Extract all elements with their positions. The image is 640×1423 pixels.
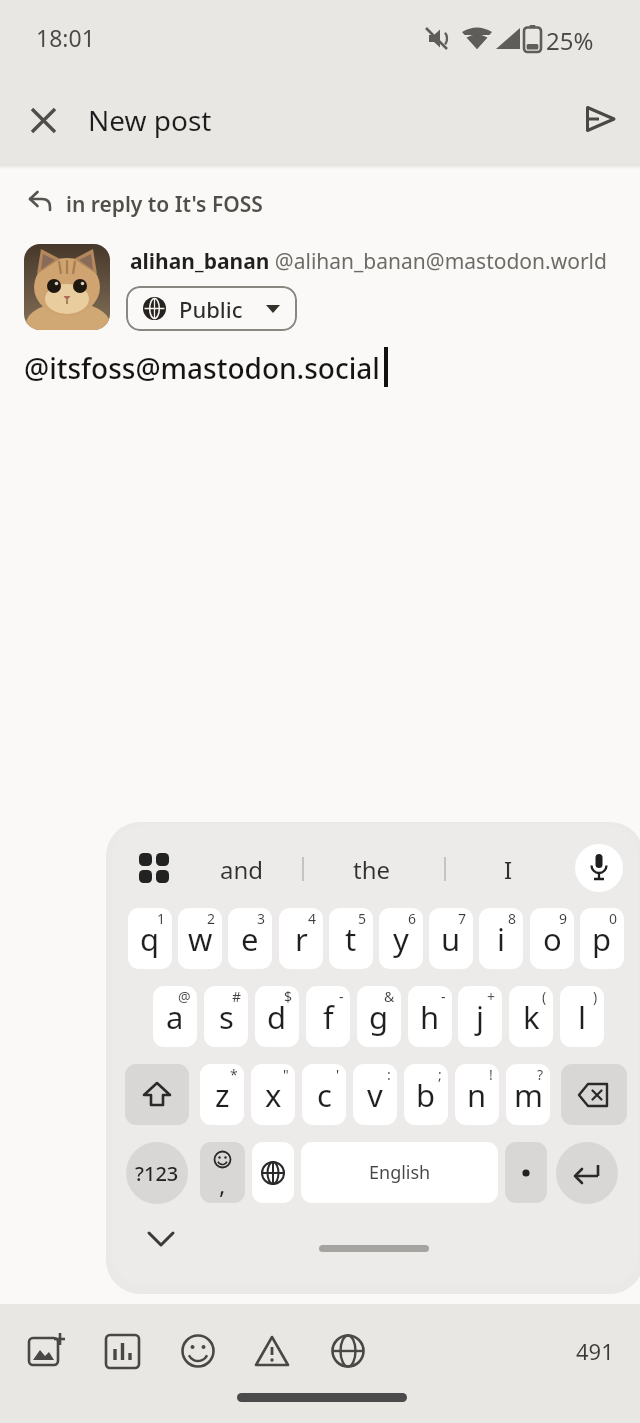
- staticText: 1: [157, 909, 166, 928]
- staticText: j: [476, 996, 484, 1038]
- button[interactable]: ,: [200, 1142, 245, 1203]
- staticText: o: [543, 918, 562, 960]
- staticText: ?: [537, 1065, 544, 1084]
- staticText: alihan_banan @alihan_banan@mastodon.worl…: [130, 247, 607, 276]
- staticText: p: [592, 918, 612, 960]
- staticText: ?123: [135, 1160, 179, 1187]
- button[interactable]: b: [404, 1064, 448, 1125]
- staticText: I: [504, 853, 513, 886]
- button[interactable]: English: [301, 1142, 498, 1203]
- staticText: 7: [458, 909, 467, 928]
- staticText: 3: [257, 909, 266, 928]
- staticText: r: [295, 918, 308, 960]
- button[interactable]: j: [458, 986, 502, 1047]
- button[interactable]: q: [128, 908, 172, 969]
- button[interactable]: [575, 844, 623, 892]
- button[interactable]: g: [357, 986, 401, 1047]
- button[interactable]: i: [479, 908, 523, 969]
- button[interactable]: h: [408, 986, 452, 1047]
- button[interactable]: z: [200, 1064, 244, 1125]
- staticText: Public: [179, 294, 243, 324]
- staticText: -: [441, 987, 446, 1006]
- staticText: h: [420, 996, 440, 1038]
- staticText: u: [441, 918, 461, 960]
- staticText: 9: [559, 909, 568, 928]
- button[interactable]: [561, 1064, 627, 1125]
- button[interactable]: and: [197, 851, 287, 887]
- button[interactable]: [146, 1229, 176, 1249]
- button[interactable]: a: [153, 986, 197, 1047]
- staticText: 491: [576, 1336, 614, 1366]
- staticText: ): [593, 987, 598, 1006]
- button[interactable]: ?123: [126, 1142, 188, 1204]
- button[interactable]: v: [353, 1064, 397, 1125]
- button[interactable]: y: [379, 908, 423, 969]
- staticText: 5: [358, 909, 367, 928]
- button[interactable]: [319, 1322, 377, 1380]
- button[interactable]: [505, 1142, 547, 1203]
- staticText: f: [323, 996, 334, 1038]
- staticText: &: [384, 987, 395, 1006]
- staticText: ,: [219, 1168, 226, 1201]
- button[interactable]: r: [279, 908, 323, 969]
- staticText: e: [241, 918, 259, 960]
- button[interactable]: x: [251, 1064, 295, 1125]
- button[interactable]: f: [306, 986, 350, 1047]
- button[interactable]: d: [255, 986, 299, 1047]
- staticText: and: [220, 853, 264, 886]
- button[interactable]: l: [560, 986, 604, 1047]
- staticText: 0: [609, 909, 618, 928]
- button[interactable]: [18, 95, 68, 145]
- button[interactable]: t: [329, 908, 373, 969]
- staticText: i: [497, 918, 505, 960]
- button[interactable]: the: [327, 851, 417, 887]
- button[interactable]: m: [506, 1064, 550, 1125]
- staticText: k: [523, 996, 540, 1038]
- button[interactable]: [243, 1322, 301, 1380]
- button[interactable]: [556, 1142, 618, 1204]
- button[interactable]: [18, 1322, 76, 1380]
- button[interactable]: [125, 1064, 189, 1125]
- button[interactable]: e: [228, 908, 272, 969]
- staticText: s: [219, 996, 234, 1038]
- staticText: +: [487, 987, 496, 1006]
- button[interactable]: s: [204, 986, 248, 1047]
- staticText: in reply to It's FOSS: [66, 190, 263, 219]
- button[interactable]: [576, 94, 626, 144]
- staticText: 8: [508, 909, 517, 928]
- staticText: 25%: [546, 24, 594, 57]
- button[interactable]: k: [509, 986, 553, 1047]
- staticText: !: [489, 1065, 493, 1084]
- staticText: y: [393, 918, 409, 960]
- staticText: t: [345, 918, 357, 960]
- button[interactable]: [136, 850, 172, 886]
- staticText: m: [514, 1074, 543, 1116]
- button[interactable]: c: [302, 1064, 346, 1125]
- button[interactable]: [93, 1322, 151, 1380]
- button[interactable]: u: [429, 908, 473, 969]
- staticText: l: [578, 996, 586, 1038]
- staticText: z: [215, 1074, 230, 1116]
- button[interactable]: n: [455, 1064, 499, 1125]
- button[interactable]: p: [580, 908, 624, 969]
- button[interactable]: o: [530, 908, 574, 969]
- staticText: English: [369, 1160, 431, 1185]
- staticText: v: [367, 1074, 383, 1116]
- staticText: c: [317, 1074, 332, 1116]
- staticText: (: [542, 987, 547, 1006]
- staticText: ": [283, 1065, 289, 1084]
- staticText: :: [387, 1065, 391, 1084]
- staticText: *: [230, 1065, 238, 1084]
- staticText: -: [339, 987, 344, 1006]
- button[interactable]: [252, 1142, 294, 1203]
- button[interactable]: [169, 1322, 227, 1380]
- button[interactable]: w: [178, 908, 222, 969]
- staticText: d: [267, 996, 287, 1038]
- button[interactable]: Public: [126, 286, 297, 331]
- staticText: g: [369, 996, 389, 1038]
- staticText: n: [467, 1074, 487, 1116]
- button[interactable]: I: [463, 851, 553, 887]
- staticText: q: [140, 918, 160, 960]
- staticText: 6: [408, 909, 417, 928]
- staticText: ;: [438, 1065, 442, 1084]
